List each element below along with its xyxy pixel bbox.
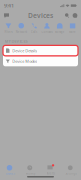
staticText: Filters xyxy=(4,30,12,34)
staticText: Activity xyxy=(26,172,35,175)
button[interactable]: Device Details xyxy=(3,45,78,56)
button[interactable]: Messages xyxy=(2,10,11,21)
staticText: 9:41 xyxy=(4,2,14,9)
staticText: Storage xyxy=(55,30,65,34)
button[interactable]: Alerts xyxy=(40,164,61,175)
staticText: Devices xyxy=(28,11,53,20)
staticText: Network xyxy=(16,30,27,34)
button[interactable]: More xyxy=(66,22,79,34)
staticText: Settings xyxy=(65,172,76,175)
button[interactable]: Account xyxy=(71,10,79,21)
button[interactable]: Network xyxy=(15,22,28,34)
staticText: Contacts xyxy=(41,30,52,34)
button[interactable]: Contacts xyxy=(40,22,53,34)
staticText: More xyxy=(69,30,76,34)
button[interactable]: Filters xyxy=(2,22,15,34)
button[interactable]: Device Modes xyxy=(3,56,78,66)
button[interactable]: Search xyxy=(63,10,71,21)
staticText: Alerts xyxy=(47,172,55,175)
staticText: Devices xyxy=(6,172,15,175)
button[interactable]: Settings xyxy=(61,164,81,175)
staticText: Calls xyxy=(31,30,37,34)
staticText: Device Details xyxy=(12,48,37,53)
button[interactable]: Storage xyxy=(53,22,66,34)
button[interactable]: Calls xyxy=(28,22,40,34)
button[interactable]: Activity xyxy=(20,164,40,175)
staticText: Device Modes xyxy=(12,58,37,64)
staticText: MY DEVICES xyxy=(4,39,27,44)
button[interactable]: Devices xyxy=(0,164,20,175)
